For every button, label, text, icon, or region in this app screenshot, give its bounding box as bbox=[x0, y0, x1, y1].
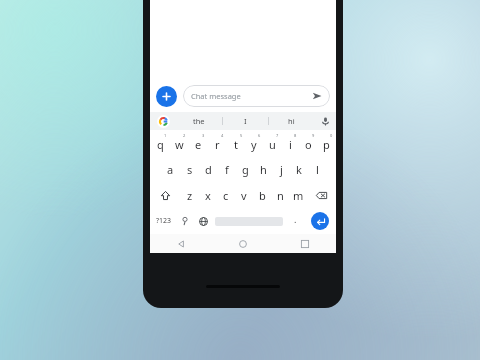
button[interactable]: Change language bbox=[194, 208, 212, 234]
staticText: i bbox=[289, 137, 292, 152]
button[interactable]: s bbox=[180, 156, 199, 182]
button[interactable]: j bbox=[272, 156, 290, 182]
button[interactable]: ?123 bbox=[151, 208, 176, 234]
button[interactable]: I bbox=[223, 112, 268, 130]
button[interactable]: Emoji bbox=[176, 208, 194, 234]
staticText: q bbox=[157, 137, 164, 152]
button[interactable]: f bbox=[218, 156, 236, 182]
staticText: l bbox=[316, 162, 319, 177]
button[interactable]: 1 bbox=[151, 130, 170, 156]
button[interactable]: Recents bbox=[274, 234, 336, 253]
staticText: u bbox=[269, 137, 276, 152]
staticText: 9 bbox=[312, 133, 315, 138]
staticText: r bbox=[215, 137, 220, 152]
staticText: Chat message bbox=[191, 91, 241, 101]
button[interactable]: 9 bbox=[299, 130, 317, 156]
staticText: . bbox=[294, 213, 297, 225]
button[interactable]: b bbox=[253, 182, 271, 208]
button[interactable]: g bbox=[236, 156, 254, 182]
staticText: o bbox=[305, 137, 312, 152]
staticText: y bbox=[251, 137, 257, 152]
staticText: 7 bbox=[276, 133, 279, 138]
button[interactable]: m bbox=[289, 182, 307, 208]
staticText: a bbox=[167, 162, 174, 177]
button[interactable]: 7 bbox=[263, 130, 281, 156]
staticText: 3 bbox=[202, 133, 205, 138]
staticText: m bbox=[293, 188, 304, 203]
staticText: s bbox=[187, 162, 193, 177]
staticText: 2 bbox=[183, 133, 186, 138]
staticText: ?123 bbox=[156, 216, 172, 226]
button[interactable]: hi bbox=[269, 112, 314, 130]
button[interactable]: k bbox=[290, 156, 308, 182]
button[interactable]: d bbox=[199, 156, 218, 182]
staticText: 4 bbox=[221, 133, 224, 138]
staticText: k bbox=[296, 162, 302, 177]
button[interactable]: 8 bbox=[281, 130, 299, 156]
staticText: j bbox=[280, 162, 283, 177]
button[interactable]: Chat message bbox=[183, 85, 330, 107]
button[interactable]: z bbox=[180, 182, 199, 208]
button[interactable]: 3 bbox=[189, 130, 208, 156]
staticText: z bbox=[187, 188, 193, 203]
staticText: x bbox=[205, 188, 211, 203]
button[interactable]: 5 bbox=[227, 130, 245, 156]
button[interactable]: c bbox=[217, 182, 235, 208]
button[interactable]: Home bbox=[212, 234, 274, 253]
staticText: f bbox=[225, 162, 229, 177]
staticText: hi bbox=[288, 116, 295, 126]
button[interactable]: Enter bbox=[304, 208, 335, 234]
staticText: 0 bbox=[330, 133, 333, 138]
staticText: t bbox=[234, 137, 238, 152]
button[interactable]: Add attachment bbox=[156, 86, 177, 107]
button[interactable]: . bbox=[286, 208, 304, 234]
button[interactable]: 6 bbox=[245, 130, 263, 156]
button[interactable]: h bbox=[254, 156, 272, 182]
staticText: the bbox=[193, 116, 205, 126]
button[interactable]: a bbox=[161, 156, 180, 182]
staticText: v bbox=[241, 188, 247, 203]
button[interactable]: Voice input bbox=[314, 112, 336, 130]
staticText: b bbox=[259, 188, 266, 203]
button[interactable]: v bbox=[235, 182, 253, 208]
staticText: c bbox=[223, 188, 229, 203]
button[interactable]: Google bbox=[150, 112, 176, 130]
button[interactable]: Backspace bbox=[307, 182, 335, 208]
staticText: d bbox=[205, 162, 212, 177]
button[interactable]: Space bbox=[212, 208, 286, 234]
button[interactable]: 4 bbox=[208, 130, 227, 156]
staticText: 8 bbox=[294, 133, 297, 138]
button[interactable]: n bbox=[271, 182, 289, 208]
staticText: I bbox=[244, 116, 247, 126]
staticText: h bbox=[260, 162, 267, 177]
staticText: e bbox=[195, 137, 202, 152]
button[interactable]: Shift bbox=[151, 182, 180, 208]
other: Send bbox=[312, 91, 322, 101]
staticText: g bbox=[242, 162, 249, 177]
button[interactable]: Back bbox=[150, 234, 212, 253]
button[interactable]: 2 bbox=[170, 130, 189, 156]
button[interactable]: l bbox=[308, 156, 326, 182]
staticText: 1 bbox=[164, 133, 167, 138]
staticText: w bbox=[175, 137, 184, 152]
staticText: 6 bbox=[258, 133, 261, 138]
staticText: p bbox=[323, 137, 330, 152]
button[interactable]: 0 bbox=[317, 130, 335, 156]
staticText: 5 bbox=[240, 133, 243, 138]
button[interactable]: the bbox=[176, 112, 222, 130]
button[interactable]: x bbox=[199, 182, 217, 208]
staticText: n bbox=[277, 188, 284, 203]
